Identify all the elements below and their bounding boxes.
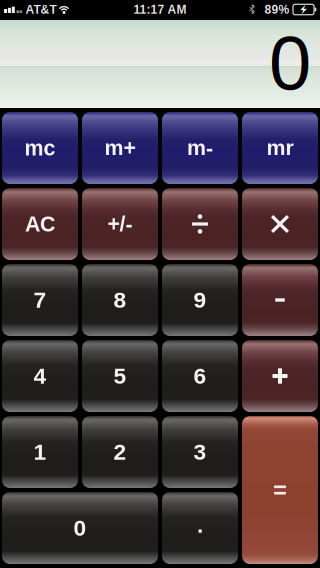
button[interactable]: 4 xyxy=(2,340,78,412)
staticText: 0 xyxy=(269,20,311,105)
button[interactable]: 6 xyxy=(162,340,238,412)
staticText: 8 xyxy=(113,287,126,313)
staticText: 5 xyxy=(113,363,126,389)
button[interactable]: 7 xyxy=(2,264,78,336)
staticText: 7 xyxy=(33,287,46,313)
staticText: 9 xyxy=(193,287,206,313)
button[interactable]: m+ xyxy=(82,112,158,184)
button[interactable]: mr xyxy=(242,112,318,184)
staticText: m+ xyxy=(104,136,135,160)
staticText: 1 xyxy=(33,439,46,465)
button[interactable]: 0 xyxy=(2,492,158,564)
button[interactable]: 9 xyxy=(162,264,238,336)
staticText: . xyxy=(197,512,203,538)
button[interactable]: Plus minus xyxy=(82,188,158,260)
staticText: AC xyxy=(25,212,55,236)
button[interactable]: Plus xyxy=(242,340,318,412)
button[interactable]: mc xyxy=(2,112,78,184)
staticText: mr xyxy=(266,136,293,160)
staticText: 6 xyxy=(193,363,206,389)
button[interactable]: 2 xyxy=(82,416,158,488)
staticText: AT&T xyxy=(25,3,56,16)
button[interactable]: 1 xyxy=(2,416,78,488)
staticText: 3 xyxy=(193,439,206,465)
button[interactable]: Minus xyxy=(242,264,318,336)
staticText: 0 xyxy=(73,515,86,541)
button[interactable]: Multiply xyxy=(242,188,318,260)
button[interactable]: Equals xyxy=(242,416,318,564)
staticText: 89% xyxy=(264,3,289,16)
button[interactable]: 3 xyxy=(162,416,238,488)
staticText: 11:17 AM xyxy=(133,3,186,16)
button[interactable]: All clear xyxy=(2,188,78,260)
staticText: +/- xyxy=(107,212,132,236)
staticText: 2 xyxy=(113,439,126,465)
button[interactable]: Divide xyxy=(162,188,238,260)
button[interactable]: 8 xyxy=(82,264,158,336)
button[interactable]: m- xyxy=(162,112,238,184)
staticText: mc xyxy=(24,136,55,160)
button[interactable]: 5 xyxy=(82,340,158,412)
staticText: 4 xyxy=(33,363,46,389)
staticText: m- xyxy=(187,136,213,160)
button[interactable]: Decimal point xyxy=(162,492,238,564)
